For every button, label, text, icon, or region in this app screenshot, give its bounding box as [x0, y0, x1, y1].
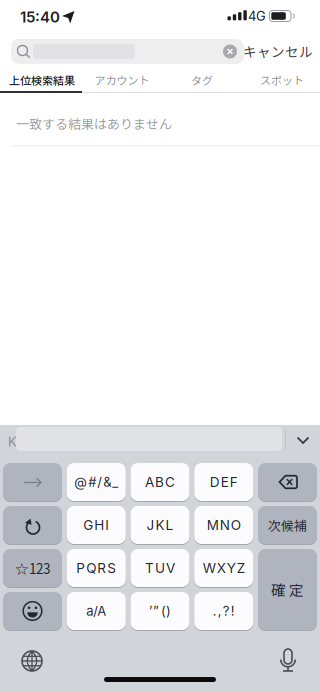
button[interactable]: 上位検索結果 — [2, 68, 82, 92]
staticText: アカウント — [94, 72, 149, 88]
staticText: G H I — [83, 517, 109, 533]
button[interactable]: @ # / & _ — [67, 463, 126, 501]
button[interactable]: . , ? ! — [194, 592, 253, 630]
staticText: 上位検索結果 — [9, 72, 75, 88]
staticText: 4G — [248, 8, 266, 24]
staticText: T U V — [145, 560, 175, 576]
button[interactable]: ☆123 — [3, 549, 62, 587]
button[interactable]: アカウント — [82, 68, 162, 92]
button[interactable]: T U V — [130, 549, 189, 587]
button[interactable]: タグ — [162, 68, 242, 92]
button[interactable] — [258, 463, 317, 501]
button[interactable]: キャンセル — [240, 41, 316, 61]
button[interactable]: P Q R S — [67, 549, 126, 587]
staticText: @ # / & _ — [74, 474, 118, 490]
button[interactable] — [3, 592, 62, 630]
button[interactable]: スポット — [242, 68, 320, 92]
staticText: スポット — [260, 72, 304, 88]
button[interactable]: 確 定 — [258, 549, 317, 630]
staticText: キャンセル — [243, 41, 313, 61]
staticText: ☆123 — [15, 558, 50, 578]
button[interactable] — [3, 506, 62, 544]
staticText: a/A — [86, 603, 106, 619]
staticText: 一致する結果はありません — [16, 114, 172, 133]
button[interactable]: a/A — [67, 592, 126, 630]
button[interactable]: D E F — [194, 463, 253, 501]
staticText: J K L — [146, 517, 173, 533]
button[interactable]: W X Y Z — [194, 549, 253, 587]
button[interactable] — [285, 425, 320, 453]
button[interactable]: G H I — [67, 506, 126, 544]
staticText: K — [8, 434, 17, 450]
staticText: タグ — [191, 72, 213, 88]
button[interactable] — [10, 639, 54, 683]
staticText: A B C — [145, 474, 175, 490]
staticText: P Q R S — [76, 560, 116, 576]
button[interactable]: ’ ” () — [130, 592, 189, 630]
button[interactable] — [3, 463, 62, 501]
button[interactable] — [11, 39, 244, 64]
staticText: M N O — [207, 517, 241, 533]
staticText: 次候補 — [268, 516, 307, 534]
button[interactable]: 次候補 — [258, 506, 317, 544]
staticText: 確 定 — [271, 579, 304, 600]
button[interactable] — [266, 638, 310, 682]
staticText: D E F — [210, 474, 238, 490]
staticText: W X Y Z — [203, 560, 245, 576]
staticText: 15:40 — [20, 8, 60, 26]
staticText: . , ? ! — [213, 603, 235, 619]
staticText: ’ ” () — [149, 603, 171, 619]
button[interactable]: J K L — [130, 506, 189, 544]
button[interactable]: M N O — [194, 506, 253, 544]
button[interactable]: A B C — [130, 463, 189, 501]
